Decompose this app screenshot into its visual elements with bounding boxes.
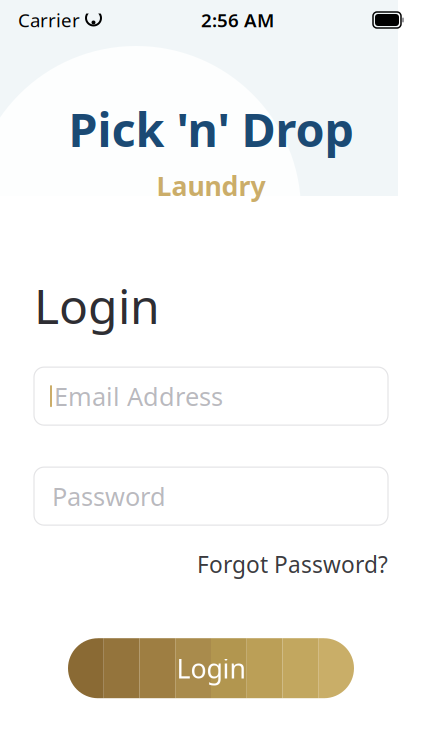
staticText: Login: [176, 650, 245, 686]
staticText: Email Address: [54, 379, 223, 413]
button[interactable]: Login: [68, 638, 354, 698]
staticText: Carrier: [18, 8, 80, 32]
staticText: Login: [34, 273, 160, 337]
staticText: 2:56 AM: [201, 8, 274, 32]
staticText: Pick 'n' Drop: [68, 98, 353, 160]
button[interactable]: Forgot Password?: [197, 545, 388, 583]
staticText: Laundry: [156, 168, 265, 203]
staticText: Password: [52, 479, 166, 513]
staticText: Forgot Password?: [197, 549, 388, 579]
